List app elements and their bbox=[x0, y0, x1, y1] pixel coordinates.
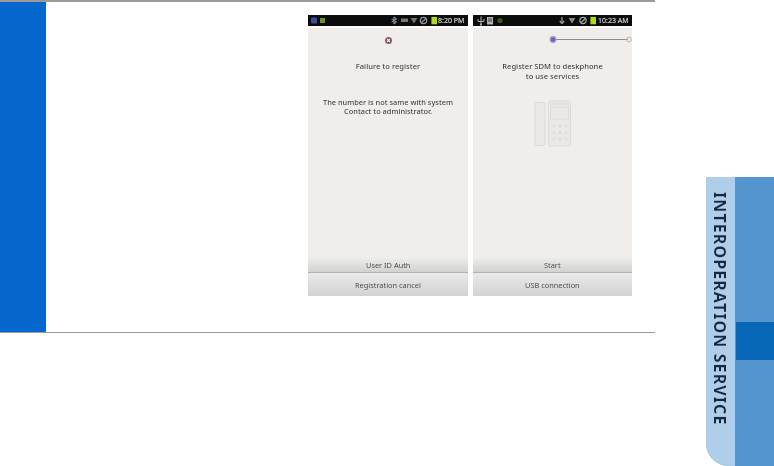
staticText: User ID Auth bbox=[366, 260, 411, 270]
staticText: Failure to register bbox=[308, 61, 468, 71]
staticText: Start bbox=[544, 260, 561, 270]
button[interactable]: Interoperation Service section bbox=[706, 177, 774, 466]
button[interactable]: Registration cancel bbox=[308, 273, 468, 296]
staticText: Contact to administrator. bbox=[308, 106, 468, 116]
staticText: 8:20 PM bbox=[438, 16, 465, 26]
button[interactable]: Registration error bbox=[382, 34, 394, 46]
staticText: The number is not same with system bbox=[308, 97, 468, 107]
staticText: Registration cancel bbox=[355, 280, 421, 290]
button[interactable]: Start bbox=[473, 258, 632, 272]
staticText: USB connection bbox=[525, 280, 580, 290]
button[interactable]: USB connection bbox=[473, 273, 632, 296]
staticText: INTEROPERATION SERVICE bbox=[709, 192, 731, 426]
staticText: to use services bbox=[473, 71, 632, 81]
staticText: Register SDM to deskphone bbox=[473, 61, 632, 71]
staticText: 10:23 AM bbox=[598, 16, 629, 26]
button[interactable]: User ID Auth bbox=[308, 258, 468, 272]
